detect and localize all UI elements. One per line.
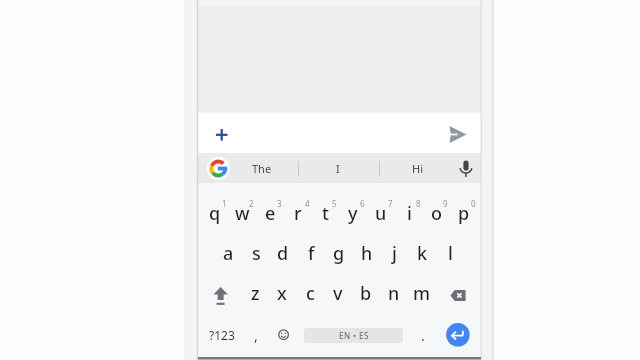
- staticText: n: [388, 281, 400, 306]
- staticText: 6: [360, 198, 365, 209]
- staticText: ?123: [209, 327, 235, 343]
- staticText: t: [322, 201, 329, 226]
- staticText: 3: [277, 198, 282, 209]
- button[interactable]: [446, 323, 470, 347]
- staticText: i: [407, 201, 412, 226]
- staticText: u: [375, 201, 387, 226]
- staticText: c: [306, 281, 315, 306]
- staticText: j: [392, 241, 397, 266]
- staticText: y: [348, 201, 358, 226]
- staticText: I: [336, 161, 340, 176]
- staticText: o: [431, 201, 442, 226]
- staticText: 4: [305, 198, 310, 209]
- staticText: x: [277, 281, 287, 306]
- staticText: EN • ES: [339, 330, 369, 341]
- staticText: g: [333, 241, 345, 266]
- staticText: v: [333, 281, 343, 306]
- staticText: ,: [254, 326, 258, 345]
- staticText: k: [417, 241, 428, 266]
- staticText: w: [235, 201, 250, 226]
- staticText: e: [265, 201, 276, 226]
- staticText: d: [277, 241, 289, 266]
- staticText: Hi: [412, 161, 423, 176]
- staticText: m: [413, 281, 431, 306]
- staticText: p: [458, 201, 470, 226]
- staticText: z: [251, 281, 260, 306]
- staticText: 1: [222, 198, 227, 209]
- button[interactable]: EN • ES: [304, 328, 403, 343]
- staticText: l: [448, 241, 453, 266]
- staticText: 0: [471, 198, 476, 209]
- staticText: .: [421, 326, 425, 345]
- staticText: a: [223, 241, 234, 266]
- staticText: 9: [443, 198, 448, 209]
- staticText: q: [209, 201, 221, 226]
- staticText: r: [294, 201, 302, 226]
- staticText: 7: [388, 198, 393, 209]
- staticText: f: [308, 241, 315, 266]
- button[interactable]: [198, 112, 481, 153]
- staticText: 8: [416, 198, 421, 209]
- staticText: 5: [332, 198, 337, 209]
- staticText: h: [361, 241, 373, 266]
- staticText: b: [360, 281, 372, 306]
- staticText: The: [252, 161, 272, 176]
- staticText: s: [252, 241, 261, 266]
- staticText: 2: [249, 198, 254, 209]
